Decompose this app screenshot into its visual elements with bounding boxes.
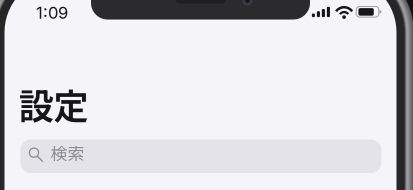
button[interactable]: 検索 <box>20 139 381 173</box>
staticText: 1:09 <box>36 3 68 23</box>
staticText: 設定 <box>19 78 89 129</box>
staticText: 検索 <box>51 140 85 165</box>
